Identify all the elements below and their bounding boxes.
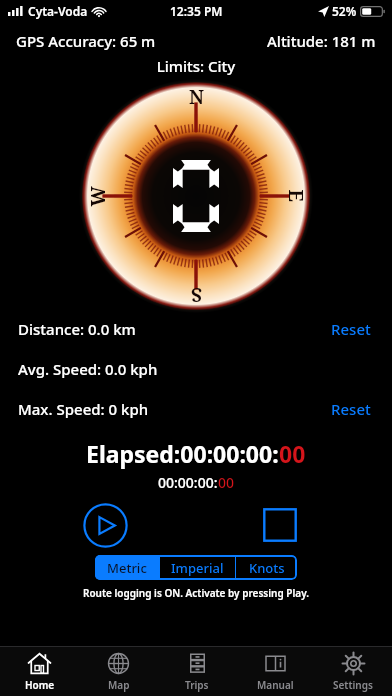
button[interactable]: Settings <box>314 647 392 696</box>
staticText: Reset <box>331 319 371 339</box>
staticText: Max. Speed: 0 kph <box>18 399 149 419</box>
button[interactable]: Map <box>79 647 158 696</box>
staticText: Reset <box>331 399 371 419</box>
staticText: 00 <box>218 473 235 492</box>
staticText: 12:35 PM <box>170 3 223 19</box>
button[interactable]: Stop <box>263 508 297 542</box>
staticText: Elapsed:00:00:00: <box>86 438 279 469</box>
staticText: W <box>84 185 110 206</box>
button[interactable]: Reset <box>328 316 374 342</box>
staticText: Settings <box>333 678 373 692</box>
staticText: Map <box>108 678 130 692</box>
staticText: Home <box>25 678 55 692</box>
button[interactable]: Trips <box>158 647 236 696</box>
button[interactable]: Imperial <box>160 555 235 580</box>
button[interactable]: Reset <box>328 396 374 422</box>
staticText: 52% <box>332 3 357 19</box>
staticText: Cyta-Voda <box>28 3 88 19</box>
staticText: 00:00:00: <box>158 473 218 492</box>
staticText: 00 <box>279 438 306 469</box>
staticText: Altitude: 181 m <box>267 31 376 51</box>
staticText: Trips <box>185 678 209 692</box>
staticText: Avg. Speed: 0.0 kph <box>18 359 158 379</box>
staticText: Imperial <box>171 559 224 577</box>
staticText: N <box>189 84 204 110</box>
button[interactable]: Start <box>83 503 128 548</box>
staticText: Metric <box>107 559 147 577</box>
button[interactable]: Manual <box>236 647 314 696</box>
button[interactable]: Metric <box>95 555 159 580</box>
button[interactable]: Knots <box>236 555 297 580</box>
staticText: S <box>190 282 202 308</box>
staticText: Manual <box>257 678 294 692</box>
staticText: Distance: 0.0 km <box>18 319 136 339</box>
button[interactable]: Home <box>0 647 79 696</box>
staticText: Limits: City <box>0 56 392 76</box>
staticText: Route logging is ON. Activate by pressin… <box>0 586 392 600</box>
staticText: Knots <box>249 559 285 577</box>
staticText: GPS Accuracy: 65 m <box>16 31 156 51</box>
staticText: E <box>282 189 308 202</box>
